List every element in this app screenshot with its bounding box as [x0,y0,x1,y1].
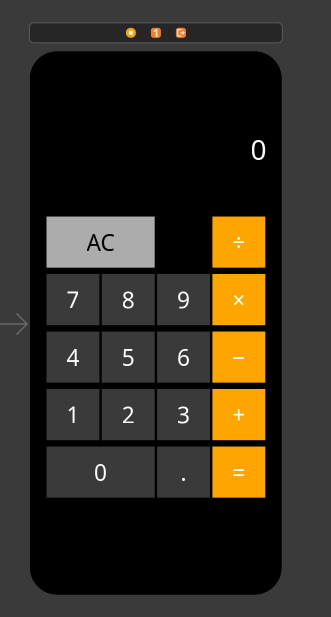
staticText: 1 [66,399,79,430]
button[interactable]: 0 [46,446,155,498]
staticText: 0 [250,130,266,168]
button[interactable]: 6 [157,331,210,383]
button[interactable]: 9 [157,274,210,325]
button[interactable]: Stop recording [126,28,136,38]
button[interactable]: 4 [46,331,99,383]
button[interactable]: − [212,331,265,383]
staticText: 3 [177,399,190,430]
staticText: 1 [153,26,159,40]
button[interactable]: . [157,446,210,498]
button[interactable]: 3 [157,389,210,440]
button[interactable]: Open in Simulator [176,28,186,38]
staticText: 6 [177,342,190,372]
staticText: 4 [66,342,79,372]
button[interactable]: 7 [46,274,99,325]
staticText: − [232,342,245,372]
staticText: 0 [94,457,107,487]
button[interactable]: ÷ [212,216,265,268]
staticText: × [232,284,245,315]
button[interactable]: × [212,274,265,325]
button[interactable]: 8 [102,274,155,325]
staticText: 8 [122,284,135,315]
staticText: 9 [177,284,190,315]
button[interactable]: AC [46,216,155,268]
staticText: + [232,399,245,430]
staticText: 2 [122,399,135,430]
button[interactable]: + [212,389,265,440]
staticText: 5 [122,342,135,372]
staticText: ÷ [232,227,245,257]
staticText: . [181,457,187,487]
button[interactable]: 1 [46,389,99,440]
button[interactable]: 2 [102,389,155,440]
button[interactable]: Connected devices [151,28,161,38]
button[interactable]: 5 [102,331,155,383]
staticText: 7 [66,284,79,315]
staticText: AC [87,227,115,257]
staticText: = [232,457,245,487]
button[interactable]: = [212,446,265,498]
